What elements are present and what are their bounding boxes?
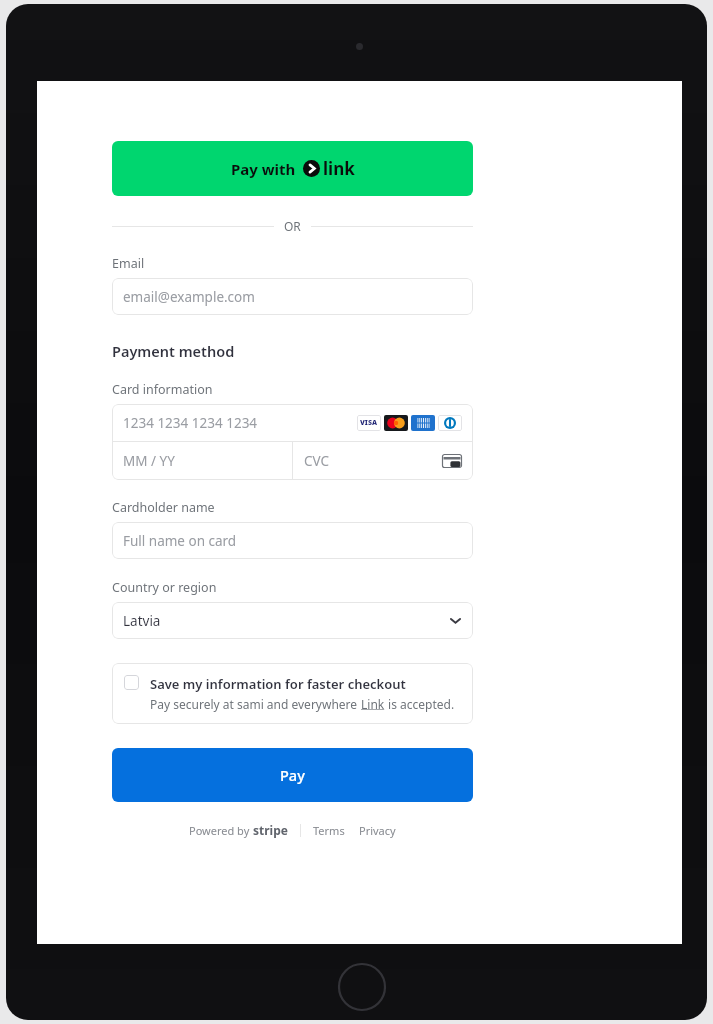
button[interactable]: Powered by: [189, 822, 288, 838]
staticText: Payment method: [112, 341, 235, 361]
staticText: 1234 1234 1234 1234: [123, 414, 357, 432]
staticText: Card information: [112, 381, 213, 398]
staticText: Full name on card: [123, 532, 237, 550]
staticText: VISA: [360, 418, 378, 428]
staticText: OR: [284, 218, 301, 234]
button[interactable]: Latvia: [112, 602, 473, 639]
staticText: Cardholder name: [112, 499, 215, 516]
button[interactable]: Home: [337, 962, 387, 1012]
button[interactable]: MM / YY: [112, 442, 292, 480]
staticText: is accepted.: [385, 696, 455, 712]
staticText: Link: [361, 696, 385, 712]
staticText: link: [323, 157, 355, 180]
staticText: Powered by: [189, 823, 253, 838]
staticText: MM / YY: [123, 452, 175, 470]
button[interactable]: Terms: [313, 823, 345, 838]
staticText: Pay securely at sami and everywhere: [150, 696, 361, 712]
button[interactable]: Save my information for faster checkout: [112, 663, 473, 724]
staticText: Country or region: [112, 579, 217, 596]
staticText: Email: [112, 255, 145, 272]
button[interactable]: Pay with: [112, 141, 473, 196]
button[interactable]: Privacy: [359, 823, 396, 838]
button[interactable]: 1234 1234 1234 1234: [112, 404, 473, 441]
staticText: Pay: [280, 765, 305, 785]
staticText: email@example.com: [123, 288, 255, 306]
staticText: Pay with: [231, 159, 296, 179]
button[interactable]: CVC: [293, 442, 473, 480]
staticText: CVC: [304, 452, 442, 470]
button[interactable]: email@example.com: [112, 278, 473, 315]
button[interactable]: Full name on card: [112, 522, 473, 559]
button[interactable]: Pay: [112, 748, 473, 802]
staticText: Latvia: [123, 612, 449, 630]
staticText: stripe: [253, 822, 288, 838]
staticText: Save my information for faster checkout: [150, 675, 406, 693]
